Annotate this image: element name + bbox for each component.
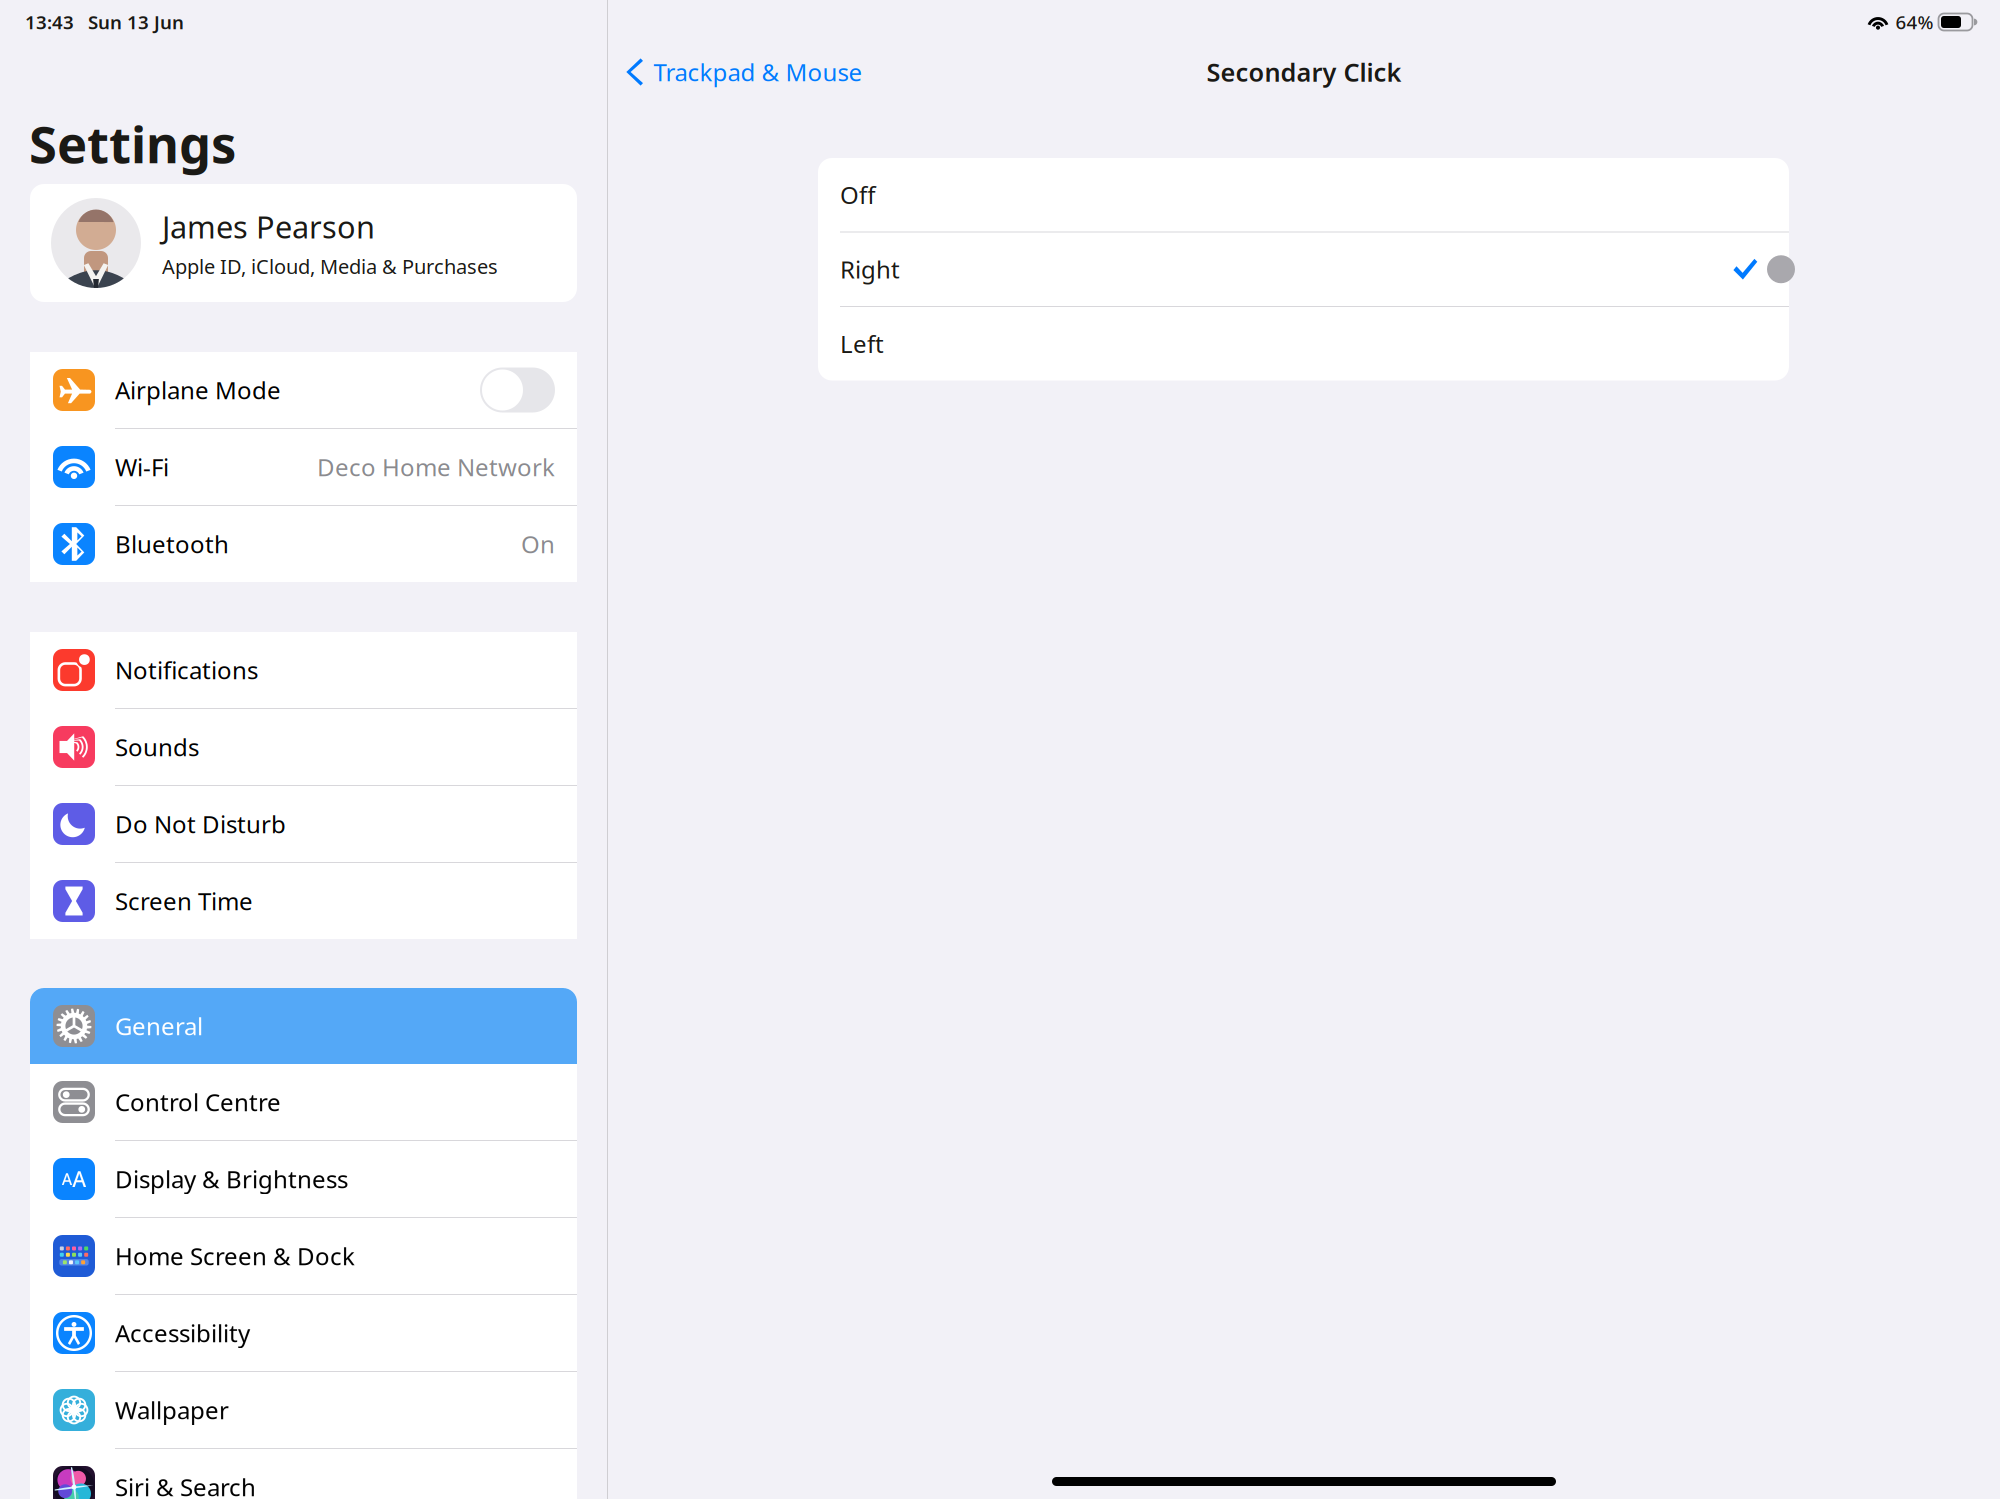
staticText: Off: [840, 179, 876, 211]
staticText: 64%: [1895, 10, 1933, 34]
staticText: Bluetooth: [115, 528, 229, 560]
button[interactable]: Airplane Mode: [30, 352, 577, 428]
button[interactable]: Control Centre: [30, 1064, 577, 1140]
button[interactable]: Home Screen & Dock: [30, 1218, 577, 1294]
button[interactable]: Sounds: [30, 709, 577, 785]
staticText: Do Not Disturb: [115, 808, 286, 840]
staticText: Wallpaper: [115, 1394, 229, 1426]
button[interactable]: Wallpaper: [30, 1372, 577, 1448]
staticText: Control Centre: [115, 1086, 281, 1118]
staticText: Screen Time: [115, 885, 253, 917]
staticText: Deco Home Network: [317, 451, 555, 483]
staticText: Siri & Search: [115, 1471, 256, 1499]
staticText: Sounds: [115, 731, 199, 763]
button[interactable]: Siri & Search: [30, 1449, 577, 1499]
button[interactable]: A: [30, 1141, 577, 1217]
staticText: James Pearson: [162, 206, 375, 247]
button[interactable]: Accessibility: [30, 1295, 577, 1371]
staticText: A: [62, 1168, 72, 1190]
button[interactable]: Notifications: [30, 632, 577, 708]
staticText: Sun 13 Jun: [88, 10, 184, 34]
staticText: Secondary Click: [1206, 55, 1401, 89]
staticText: 13:43: [25, 10, 74, 34]
button[interactable]: Back to Trackpad & Mouse: [608, 46, 872, 98]
button[interactable]: Right: [818, 232, 1789, 306]
staticText: Trackpad & Mouse: [653, 56, 862, 88]
button[interactable]: General: [30, 988, 577, 1064]
staticText: Wi-Fi: [115, 451, 169, 483]
staticText: Home Screen & Dock: [115, 1240, 355, 1272]
staticText: On: [521, 528, 555, 560]
staticText: Display & Brightness: [115, 1163, 348, 1195]
button[interactable]: Do Not Disturb: [30, 786, 577, 862]
button[interactable]: Airplane Mode, off: [480, 367, 555, 412]
staticText: Left: [840, 328, 884, 360]
staticText: Accessibility: [115, 1317, 250, 1349]
staticText: Settings: [29, 110, 236, 177]
button[interactable]: Off: [818, 158, 1789, 231]
button[interactable]: Bluetooth: [30, 506, 577, 582]
button[interactable]: James Pearson — Apple ID, iCloud, Media …: [30, 184, 577, 302]
staticText: Airplane Mode: [115, 374, 281, 406]
staticText: General: [115, 1010, 203, 1042]
button[interactable]: Screen Time: [30, 863, 577, 939]
staticText: Right: [840, 253, 900, 285]
staticText: Notifications: [115, 654, 258, 686]
staticText: Apple ID, iCloud, Media & Purchases: [162, 253, 498, 280]
staticText: A: [72, 1165, 86, 1193]
button[interactable]: Wi-Fi: [30, 429, 577, 505]
button[interactable]: Left: [818, 307, 1789, 380]
